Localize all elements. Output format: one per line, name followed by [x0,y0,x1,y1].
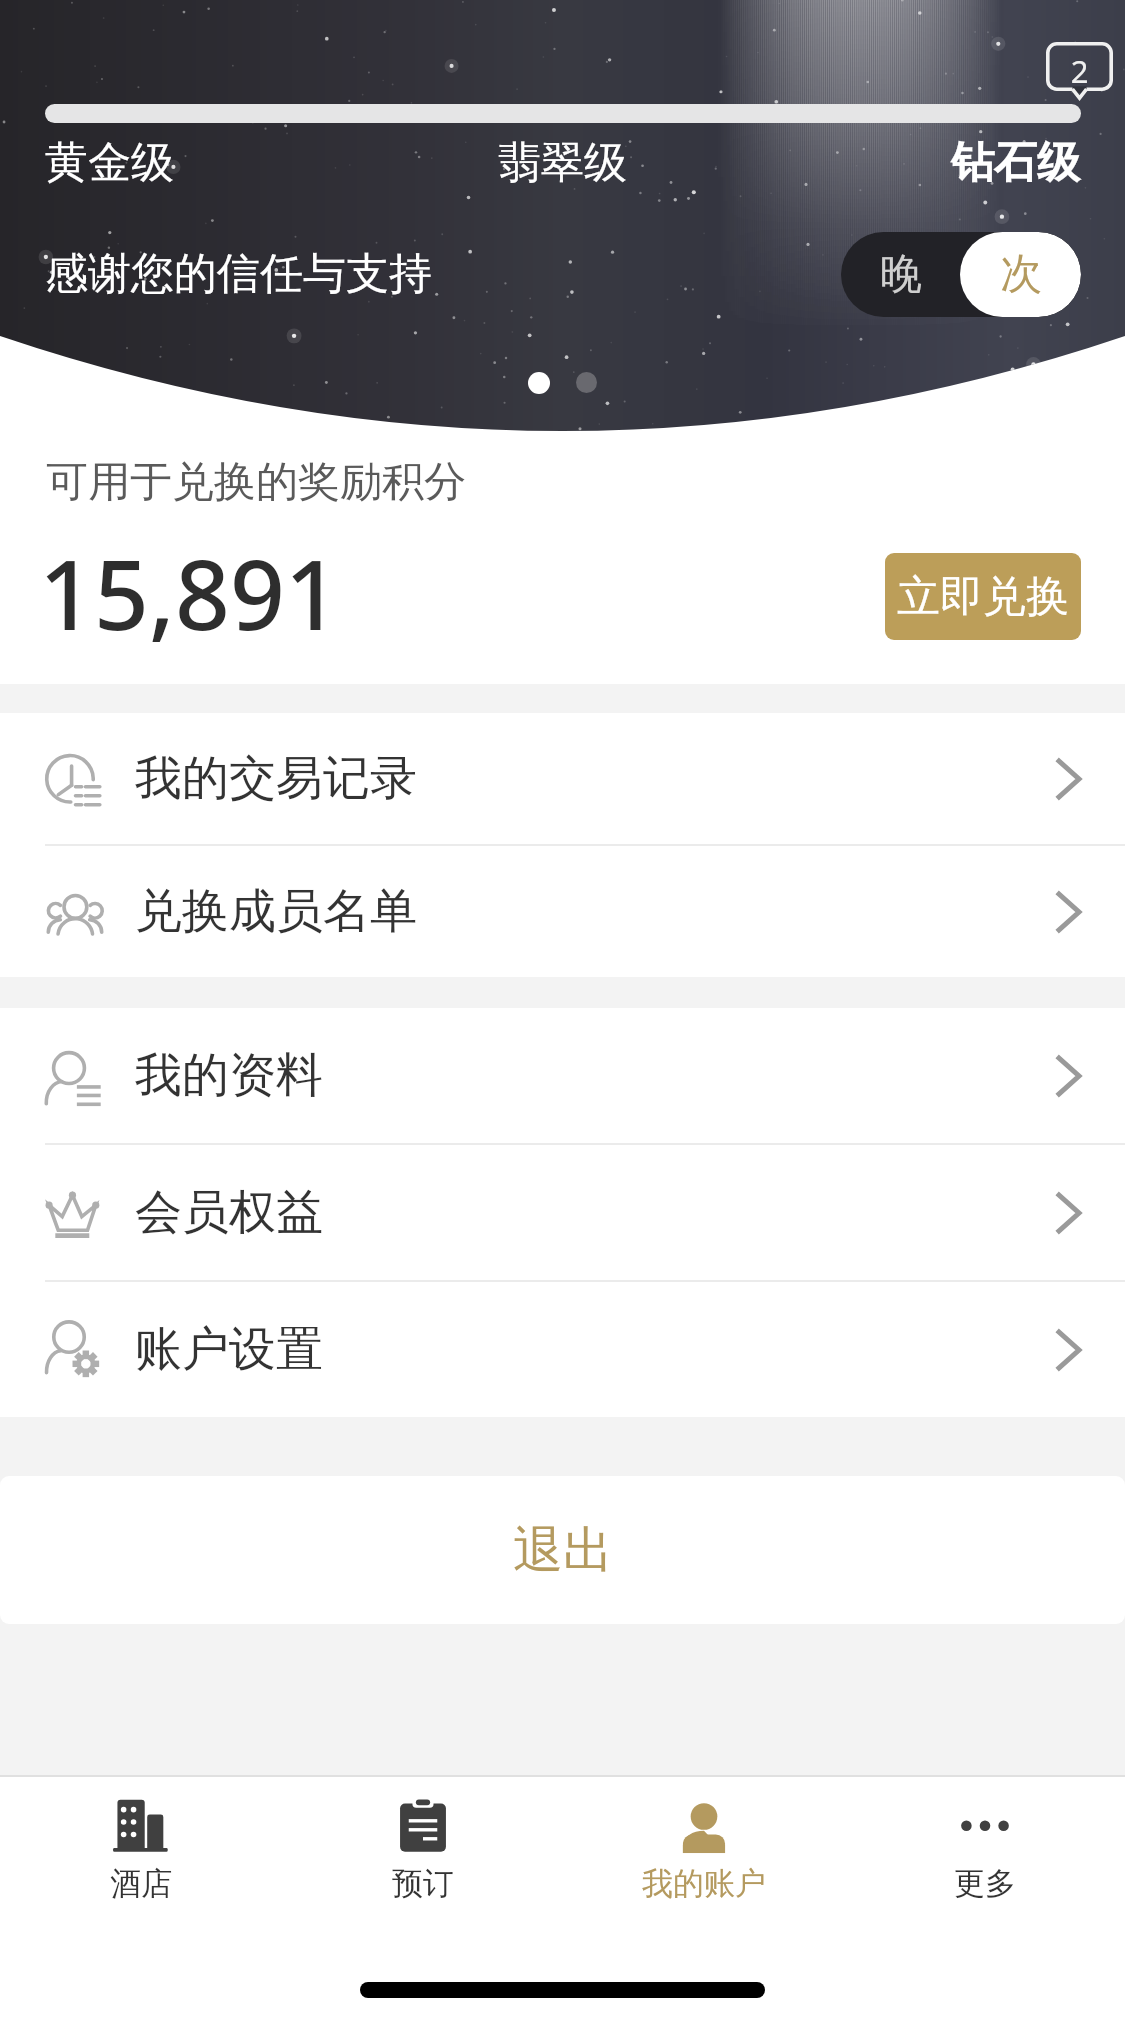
staticText: 我的资料 [135,1046,323,1105]
staticText: 立即兑换 [897,570,1069,624]
staticText: 账户设置 [135,1320,323,1379]
staticText: 退出 [513,1519,613,1582]
button[interactable]: 预订 [282,1777,563,1952]
staticText: 15,891 [39,527,340,658]
staticText: 兑换成员名单 [135,882,417,941]
staticText: 钻石级 [951,136,1080,190]
button[interactable]: 立即兑换 [885,553,1081,640]
staticText: 黄金级 [45,136,174,190]
button[interactable]: 会员权益 [0,1145,1125,1280]
button[interactable]: 退出 [0,1476,1125,1624]
button[interactable]: 晚 [841,232,1081,317]
staticText: 翡翠级 [498,136,627,190]
staticText: 可用于兑换的奖励积分 [46,456,466,509]
button[interactable]: Nights remaining [1046,42,1116,102]
staticText: 会员权益 [135,1183,323,1242]
staticText: 我的交易记录 [135,749,417,808]
staticText: 预订 [392,1864,454,1903]
button[interactable]: 账户设置 [0,1282,1125,1417]
staticText: 感谢您的信任与支持 [45,247,432,301]
staticText: 2 [1046,50,1113,92]
button[interactable]: 我的账户 [563,1777,844,1952]
button[interactable]: 我的资料 [0,1008,1125,1143]
staticText: 我的账户 [642,1864,766,1903]
button[interactable]: 我的交易记录 [0,713,1125,844]
staticText: 晚 [880,248,922,301]
staticText: 次 [1000,248,1042,301]
button[interactable]: 更多 [844,1777,1125,1952]
staticText: 更多 [954,1864,1016,1903]
staticText: 酒店 [110,1864,172,1903]
button[interactable]: 酒店 [0,1777,282,1952]
button[interactable]: 兑换成员名单 [0,846,1125,977]
